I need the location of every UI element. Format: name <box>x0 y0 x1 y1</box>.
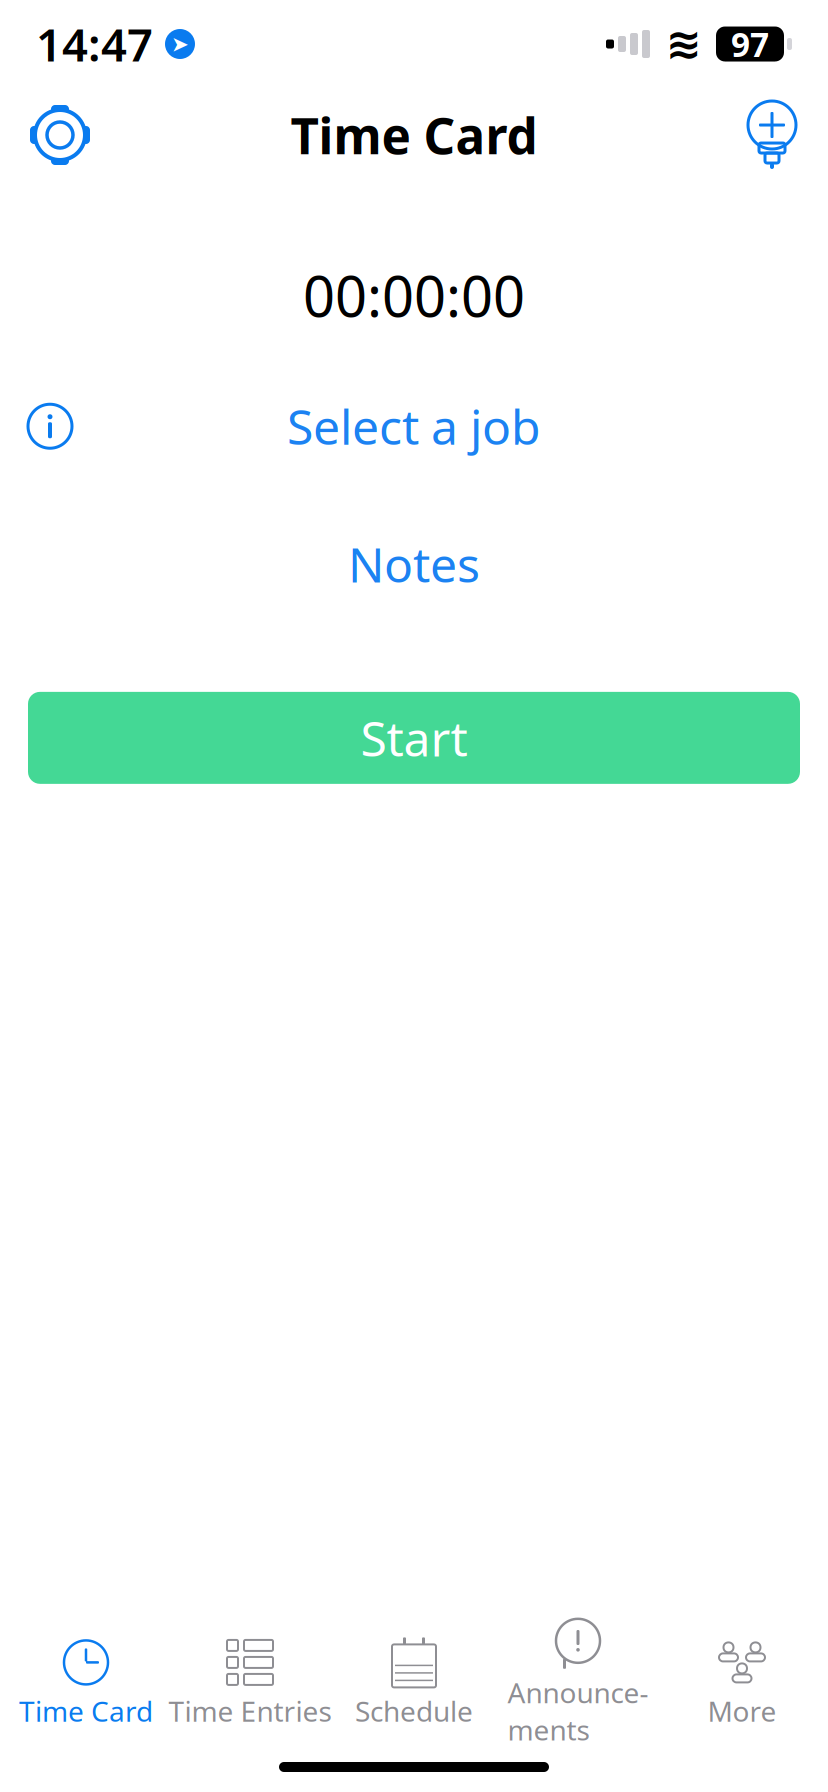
button[interactable]: Start <box>28 692 800 784</box>
staticText: More <box>707 1692 776 1730</box>
button[interactable]: Schedule <box>332 1632 496 1734</box>
staticText: ≋ <box>666 20 702 68</box>
button[interactable]: Settings <box>28 103 92 167</box>
button[interactable]: Select a job <box>0 382 828 470</box>
button[interactable]: Notes <box>0 520 828 608</box>
button[interactable]: Announcements <box>496 1614 660 1752</box>
staticText: Select a job <box>287 394 541 458</box>
button[interactable]: Time Card <box>4 1632 168 1734</box>
button[interactable]: Job information <box>24 400 76 452</box>
staticText: Schedule <box>355 1692 473 1730</box>
staticText: Start <box>360 706 467 770</box>
button[interactable]: Add location <box>744 101 800 169</box>
staticText: 14:47 <box>36 14 153 74</box>
staticText: Time Entries <box>168 1692 331 1730</box>
staticText: Announcements <box>507 1674 648 1748</box>
staticText: 97 <box>731 22 769 66</box>
button[interactable]: Time Entries <box>168 1632 332 1734</box>
staticText: 00:00:00 <box>303 258 525 332</box>
staticText: Time Card <box>290 102 537 168</box>
staticText: Notes <box>348 532 480 596</box>
staticText: Time Card <box>19 1692 153 1730</box>
staticText: ➤ <box>171 32 189 56</box>
button[interactable]: More <box>660 1632 824 1734</box>
